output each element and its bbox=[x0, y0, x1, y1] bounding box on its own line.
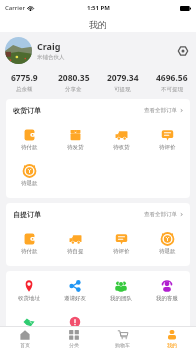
staticText: 2079.34 bbox=[107, 72, 139, 84]
staticText: 待评价 bbox=[159, 144, 176, 151]
staticText: 查看全部订单 bbox=[144, 107, 177, 114]
staticText: 查看全部订单 bbox=[144, 211, 177, 218]
button[interactable]: 合作商家 bbox=[6, 309, 52, 345]
staticText: 待退款 bbox=[21, 180, 38, 187]
button[interactable]: 查看全部订单 bbox=[144, 107, 184, 114]
staticText: 待收货 bbox=[113, 144, 130, 151]
staticText: 分享金 bbox=[65, 86, 82, 93]
button[interactable]: 2079.34 bbox=[98, 72, 147, 93]
staticText: 分类 bbox=[69, 342, 79, 348]
staticText: 待发货 bbox=[67, 144, 84, 151]
button[interactable]: 待付款 bbox=[6, 122, 52, 158]
staticText: 我的 bbox=[167, 342, 177, 348]
staticText: 6775.9 bbox=[11, 72, 38, 84]
staticText: 收货订单 bbox=[13, 106, 41, 115]
button[interactable]: 我的客服 bbox=[144, 273, 190, 309]
staticText: 首页 bbox=[20, 342, 30, 348]
staticText: Craig bbox=[37, 40, 61, 52]
staticText: 待评价 bbox=[113, 248, 130, 255]
button[interactable]: 待收货 bbox=[98, 122, 144, 158]
button[interactable]: 待自提 bbox=[52, 226, 98, 262]
staticText: 4696.56 bbox=[156, 72, 188, 84]
button[interactable]: 6775.9 bbox=[0, 72, 49, 93]
button[interactable]: 待评价 bbox=[98, 226, 144, 262]
button[interactable]: Settings bbox=[175, 43, 190, 58]
staticText: 总余额 bbox=[16, 86, 33, 93]
button[interactable]: 购物车 bbox=[98, 330, 147, 348]
staticText: 米铺合伙人 bbox=[37, 54, 65, 61]
staticText: 合作商家 bbox=[18, 331, 40, 338]
button[interactable]: 我的收藏 bbox=[52, 309, 98, 345]
staticText: 不可提现 bbox=[161, 86, 183, 93]
staticText: 我的 bbox=[89, 19, 107, 30]
staticText: 我的收藏 bbox=[64, 331, 86, 338]
button[interactable]: 我的团队 bbox=[98, 273, 144, 309]
button[interactable]: 待发货 bbox=[52, 122, 98, 158]
staticText: 待付款 bbox=[21, 144, 38, 151]
staticText: 待付款 bbox=[21, 248, 38, 255]
button[interactable]: 分类 bbox=[49, 330, 98, 348]
staticText: 邀请好友 bbox=[64, 295, 86, 302]
button[interactable]: 待退款 bbox=[144, 226, 190, 262]
button[interactable]: 邀请好友 bbox=[52, 273, 98, 309]
button[interactable]: 待退款 bbox=[6, 158, 52, 194]
button[interactable]: 我的 bbox=[147, 330, 196, 348]
button[interactable]: 查看全部订单 bbox=[144, 211, 184, 218]
staticText: Carrier bbox=[5, 4, 25, 12]
staticText: 我的团队 bbox=[110, 295, 132, 302]
staticText: 收货地址 bbox=[18, 295, 40, 302]
button[interactable]: 待评价 bbox=[144, 122, 190, 158]
staticText: 购物车 bbox=[115, 342, 130, 348]
staticText: 2080.35 bbox=[58, 72, 90, 84]
button[interactable]: 2080.35 bbox=[49, 72, 98, 93]
staticText: 1:51 PM bbox=[87, 4, 110, 12]
staticText: 我的客服 bbox=[156, 295, 178, 302]
staticText: 待自提 bbox=[67, 248, 84, 255]
staticText: 可提现 bbox=[114, 86, 131, 93]
staticText: 待退款 bbox=[159, 248, 176, 255]
button[interactable]: 4696.56 bbox=[147, 72, 196, 93]
button[interactable]: 首页 bbox=[0, 330, 49, 348]
button[interactable]: 收货地址 bbox=[6, 273, 52, 309]
button[interactable]: 待付款 bbox=[6, 226, 52, 262]
staticText: 自提订单 bbox=[13, 210, 41, 219]
